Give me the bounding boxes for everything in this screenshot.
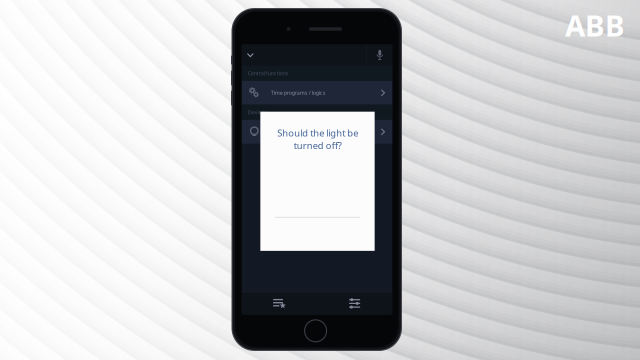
- button[interactable]: Controls: [317, 292, 392, 314]
- staticText: Should the light be turned off?: [277, 127, 358, 151]
- staticText: ABB: [565, 5, 625, 44]
- button[interactable]: Living room: [242, 120, 392, 144]
- staticText: Living room: [271, 128, 299, 135]
- staticText: Devices: [248, 109, 268, 116]
- button[interactable]: [260, 218, 375, 251]
- button[interactable]: Time programs / logics: [242, 81, 392, 105]
- button[interactable]: Favourites: [242, 292, 317, 314]
- button[interactable]: Back: [242, 46, 264, 64]
- button[interactable]: Voice control: [366, 46, 392, 65]
- staticText: Time programs / logics: [271, 89, 326, 96]
- staticText: Central functions: [248, 70, 289, 77]
